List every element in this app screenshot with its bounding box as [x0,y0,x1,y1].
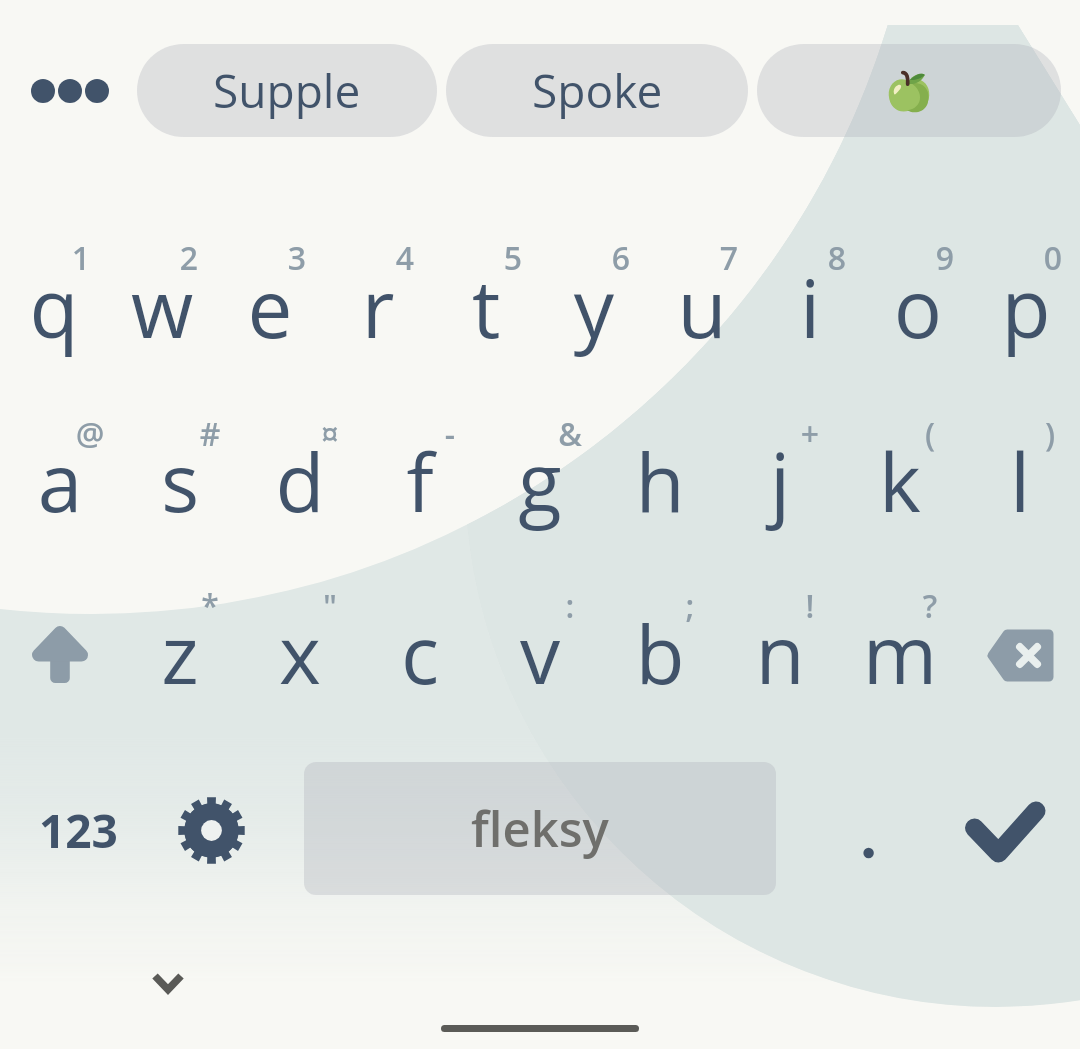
staticText: # [185,412,235,456]
button[interactable]: 4 [324,223,432,372]
button[interactable]: Enter [945,780,1065,880]
staticText: 5 [488,236,538,280]
button[interactable]: fleksy [304,762,776,895]
staticText: e [216,252,324,361]
staticText: " [305,584,355,628]
button[interactable]: ( [840,399,960,546]
button[interactable]: 7 [648,223,756,372]
staticText: u [648,252,756,361]
button[interactable]: 5 [432,223,540,372]
staticText: * [185,584,235,628]
staticText: z [120,598,240,707]
staticText: + [785,412,835,456]
staticText: 1 [56,236,106,280]
button[interactable]: 1 [0,223,108,372]
button[interactable]: ! [720,571,840,718]
staticText: a [0,426,120,535]
button[interactable]: + [720,399,840,546]
staticText: 7 [704,236,754,280]
button[interactable]: c [360,571,480,718]
staticText: p [972,252,1080,361]
button[interactable]: Supple [137,44,437,137]
staticText: q [0,252,108,361]
staticText: 4 [380,236,430,280]
staticText: w [108,252,216,361]
staticText: 2 [164,236,214,280]
staticText: ; [665,584,715,628]
button[interactable]: ? [840,571,960,718]
staticText: d [240,426,360,535]
staticText: l [960,426,1080,535]
staticText: m [840,598,960,707]
staticText: h [600,426,720,535]
button[interactable]: Period [809,783,929,923]
button[interactable]: ) [960,399,1080,546]
staticText: f [360,426,480,535]
button[interactable]: # [120,399,240,546]
button[interactable]: 2 [108,223,216,372]
button[interactable]: Green apple emoji [757,44,1061,137]
staticText: s [120,426,240,535]
button[interactable]: : [480,571,600,718]
button[interactable]: & [480,399,600,546]
staticText: g [480,426,600,535]
staticText: 8 [812,236,862,280]
staticText: Supple [213,59,361,122]
staticText: 6 [596,236,646,280]
button[interactable]: 3 [216,223,324,372]
staticText: t [432,252,540,361]
staticText: ) [1025,412,1075,456]
button[interactable]: " [240,571,360,718]
button[interactable]: - [360,399,480,546]
button[interactable]: Settings [151,760,271,900]
button[interactable]: ; [600,571,720,718]
button[interactable]: 8 [756,223,864,372]
staticText: x [240,598,360,707]
staticText: 9 [920,236,970,280]
staticText: 0 [1028,236,1078,280]
staticText: ( [905,412,955,456]
staticText: fleksy [471,795,609,862]
staticText: c [360,598,480,707]
staticText: y [540,252,648,361]
staticText: i [756,252,864,361]
staticText: ¤ [305,412,355,456]
staticText: : [545,584,595,628]
staticText: r [324,252,432,361]
staticText: - [425,412,475,456]
staticText: o [864,252,972,361]
button[interactable]: 123 [18,760,138,900]
button[interactable]: More options [20,44,120,137]
button[interactable]: ¤ [240,399,360,546]
button[interactable]: Shift [0,572,120,722]
staticText: j [720,426,840,535]
staticText: 123 [39,799,118,862]
staticText: k [840,426,960,535]
staticText: Spoke [532,59,663,122]
button[interactable]: Backspace [960,572,1080,722]
button[interactable]: 9 [864,223,972,372]
button[interactable]: 6 [540,223,648,372]
button[interactable]: * [120,571,240,718]
staticText: b [600,598,720,707]
staticText: ? [905,584,955,628]
button[interactable]: h [600,399,720,546]
button[interactable]: Spoke [446,44,748,137]
staticText: 3 [272,236,322,280]
button[interactable]: @ [0,399,120,546]
button[interactable]: Hide keyboard [128,945,208,1025]
staticText: v [480,598,600,707]
button[interactable]: 0 [972,223,1080,372]
staticText: @ [65,412,115,456]
staticText: & [545,412,595,456]
staticText: n [720,598,840,707]
staticText: ! [785,584,835,628]
